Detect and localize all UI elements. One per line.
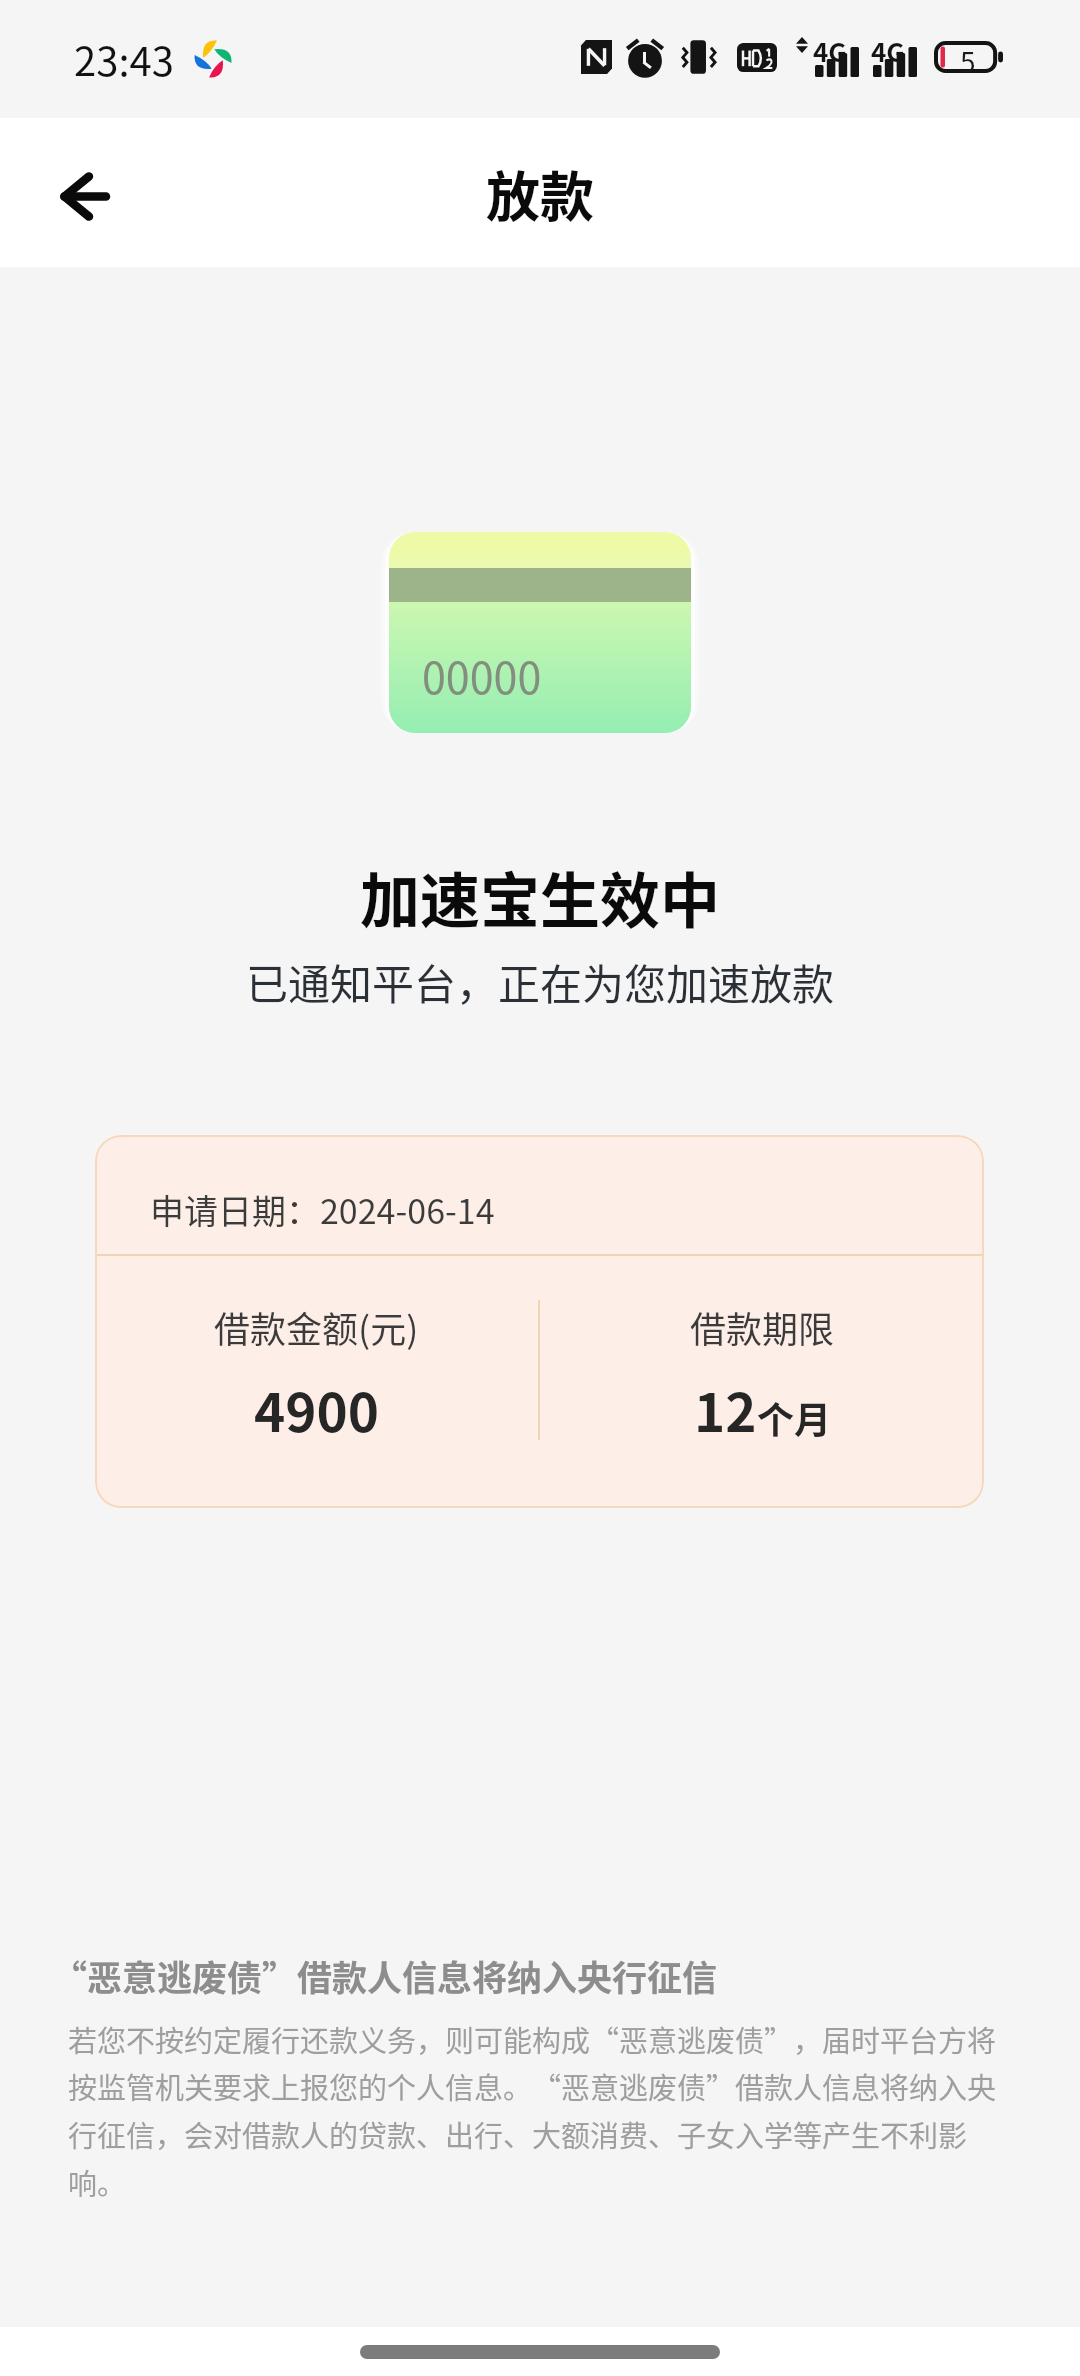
staticText: 已通知平台，正在为您加速放款 (0, 951, 1080, 1012)
staticText: 4G (871, 32, 905, 70)
staticText: 放款 (486, 154, 594, 232)
staticText: 12 (694, 1371, 757, 1448)
staticText: 5 (960, 41, 976, 73)
staticText: “恶意逃废债”借款人信息将纳入央行征信 (52, 1950, 718, 2001)
staticText: 00000 (422, 644, 542, 706)
staticText: 4900 (254, 1371, 380, 1448)
staticText: 借款期限 (690, 1301, 835, 1353)
staticText: 申请日期：2024-06-14 (150, 1185, 495, 1234)
staticText: 23:43 (74, 30, 174, 88)
staticText: 个月 (757, 1391, 831, 1445)
button[interactable]: Back (35, 143, 135, 243)
staticText: 若您不按约定履行还款义务，则可能构成“恶意逃废债”，届时平台方将按监管机关要求上… (68, 2018, 1022, 2204)
staticText: 加速宝生效中 (0, 853, 1080, 940)
staticText: 借款金额(元) (214, 1301, 419, 1353)
staticText: 4G (813, 32, 847, 70)
